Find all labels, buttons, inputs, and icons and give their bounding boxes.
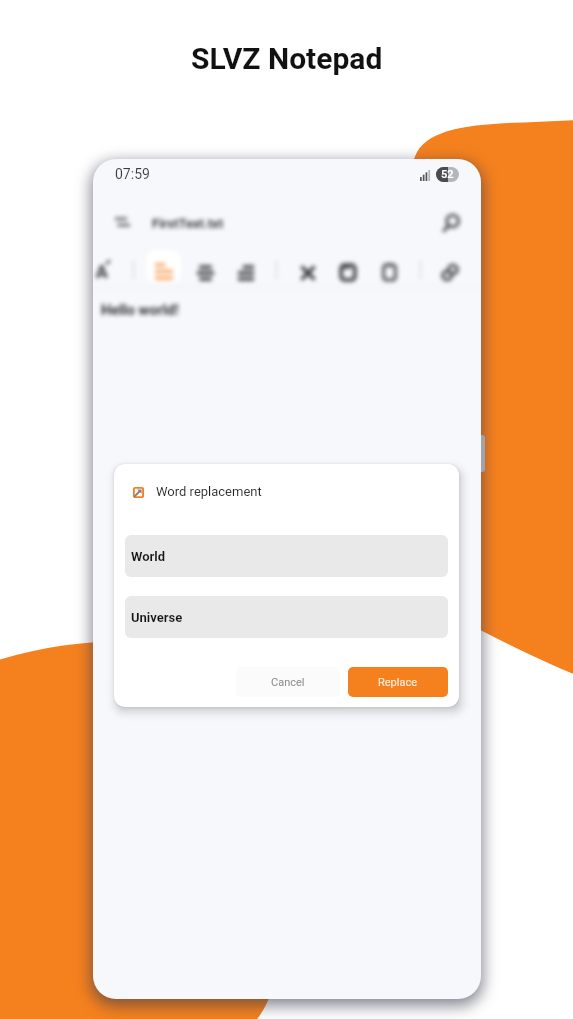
staticText: Universe <box>131 610 183 625</box>
staticText: SLVZ Notepad <box>191 41 383 76</box>
staticText: 52 <box>441 168 454 181</box>
staticText: Replace <box>378 676 418 689</box>
button[interactable]: World <box>125 535 448 577</box>
staticText: FirstText.txt <box>152 216 224 231</box>
staticText: World <box>131 549 166 564</box>
staticText: Cancel <box>271 676 305 689</box>
staticText: Word replacement <box>156 484 262 499</box>
button[interactable]: Replace <box>348 667 448 697</box>
button[interactable]: Cancel <box>236 667 340 697</box>
staticText: 07:59 <box>115 166 150 182</box>
button[interactable]: Universe <box>125 596 448 638</box>
staticText: Hello world! <box>101 302 179 319</box>
